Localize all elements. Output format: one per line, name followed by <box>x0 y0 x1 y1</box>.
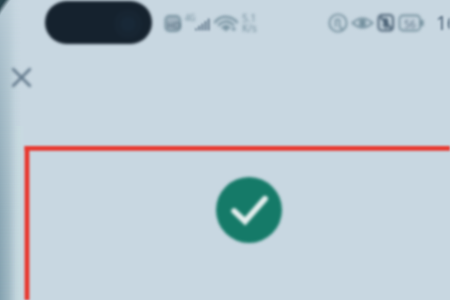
staticText: 56 <box>404 17 417 31</box>
staticText: K/s <box>242 21 257 35</box>
staticText: HD <box>167 19 181 32</box>
staticText: 5.1 <box>242 11 257 25</box>
staticText: 16: <box>436 10 450 36</box>
button[interactable]: Success <box>216 177 282 243</box>
staticText: 4G <box>185 12 196 23</box>
button[interactable]: Close <box>8 64 35 91</box>
